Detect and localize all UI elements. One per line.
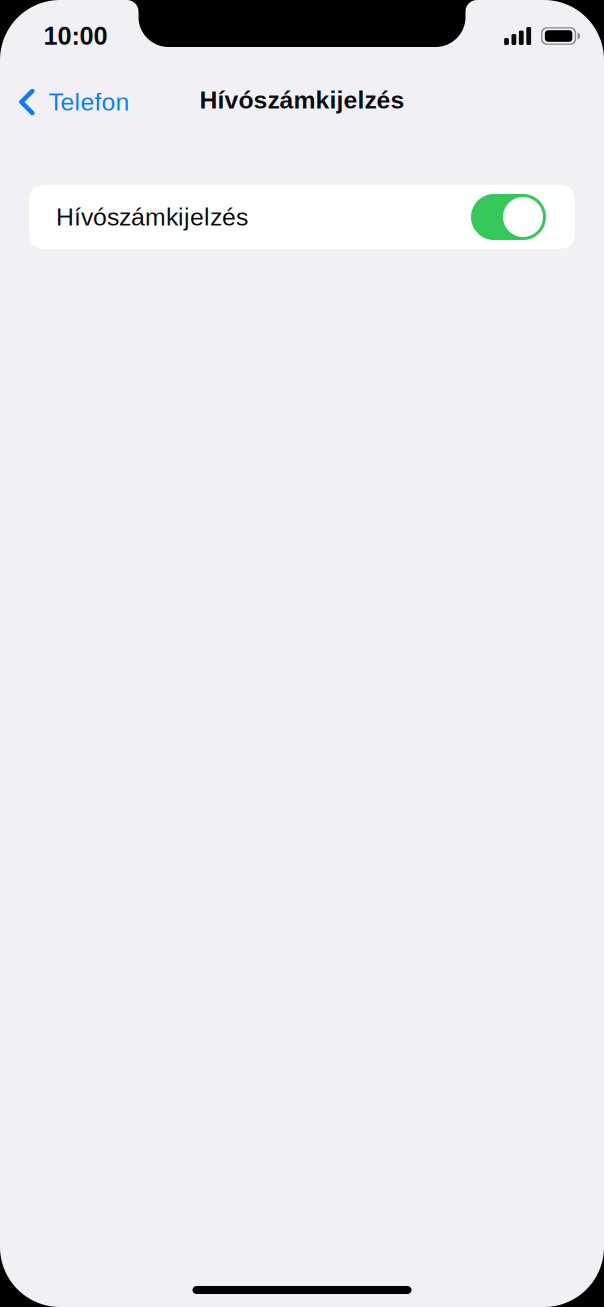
staticText: Telefon (49, 88, 130, 116)
button[interactable]: Telefon (0, 72, 144, 132)
staticText: Hívószámkijelzés (199, 86, 404, 114)
staticText: 10:00 (43, 22, 107, 50)
staticText: Hívószámkijelzés (56, 203, 248, 231)
button[interactable]: Hívószámkijelzés (29, 185, 575, 249)
